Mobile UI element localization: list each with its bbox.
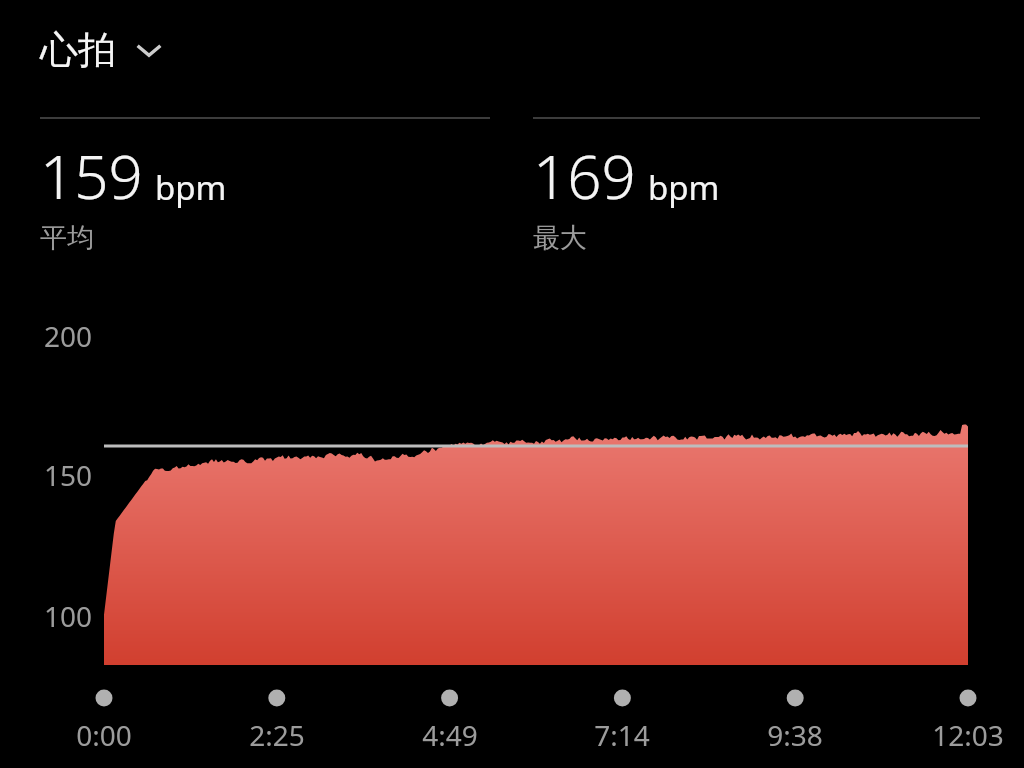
staticText: 200 bbox=[44, 317, 93, 355]
staticText: 100 bbox=[44, 597, 93, 635]
staticText: 4:49 bbox=[380, 716, 520, 754]
staticText: bpm bbox=[155, 165, 227, 210]
staticText: 2:25 bbox=[207, 716, 347, 754]
staticText: 7:14 bbox=[552, 716, 692, 754]
staticText: 0:00 bbox=[34, 716, 174, 754]
staticText: 心拍 bbox=[40, 26, 116, 74]
button[interactable]: 169 bbox=[533, 117, 980, 255]
staticText: 9:38 bbox=[725, 716, 865, 754]
staticText: 169 bbox=[533, 135, 636, 217]
other: Expand heart rate bbox=[134, 35, 164, 65]
button[interactable]: 159 bbox=[40, 117, 490, 255]
staticText: 最大 bbox=[533, 221, 587, 255]
staticText: 平均 bbox=[40, 221, 94, 255]
staticText: 12:03 bbox=[898, 716, 1024, 754]
staticText: 150 bbox=[44, 456, 93, 494]
button[interactable]: 心拍 bbox=[40, 26, 164, 74]
staticText: bpm bbox=[648, 165, 720, 210]
staticText: 159 bbox=[40, 135, 143, 217]
